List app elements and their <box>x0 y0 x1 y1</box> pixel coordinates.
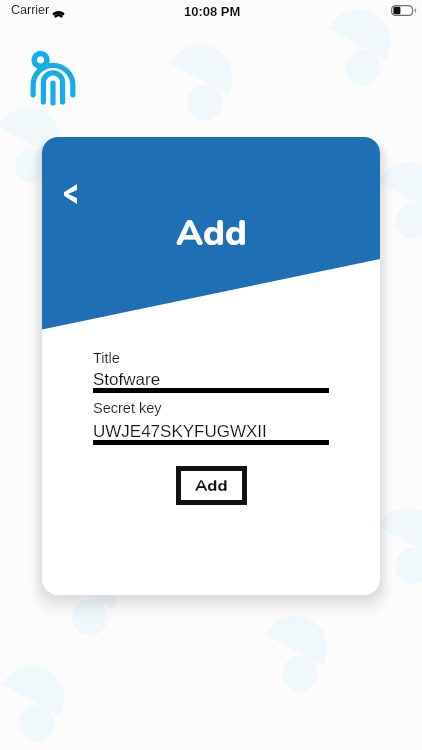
button[interactable]: Back <box>50 174 90 214</box>
staticText: Carrier <box>11 3 50 17</box>
staticText: Title <box>93 350 120 366</box>
staticText: Add <box>176 209 247 258</box>
button[interactable]: Add <box>181 471 242 500</box>
staticText: 10:08 PM <box>184 4 241 19</box>
staticText: Secret key <box>93 400 162 416</box>
other: App logo <box>29 50 77 108</box>
staticText: Stofware <box>93 370 161 389</box>
staticText: Add <box>195 474 228 497</box>
staticText: UWJE47SKYFUGWXII <box>93 422 267 441</box>
button[interactable]: Title <box>93 350 329 393</box>
button[interactable]: Secret key <box>93 400 329 445</box>
